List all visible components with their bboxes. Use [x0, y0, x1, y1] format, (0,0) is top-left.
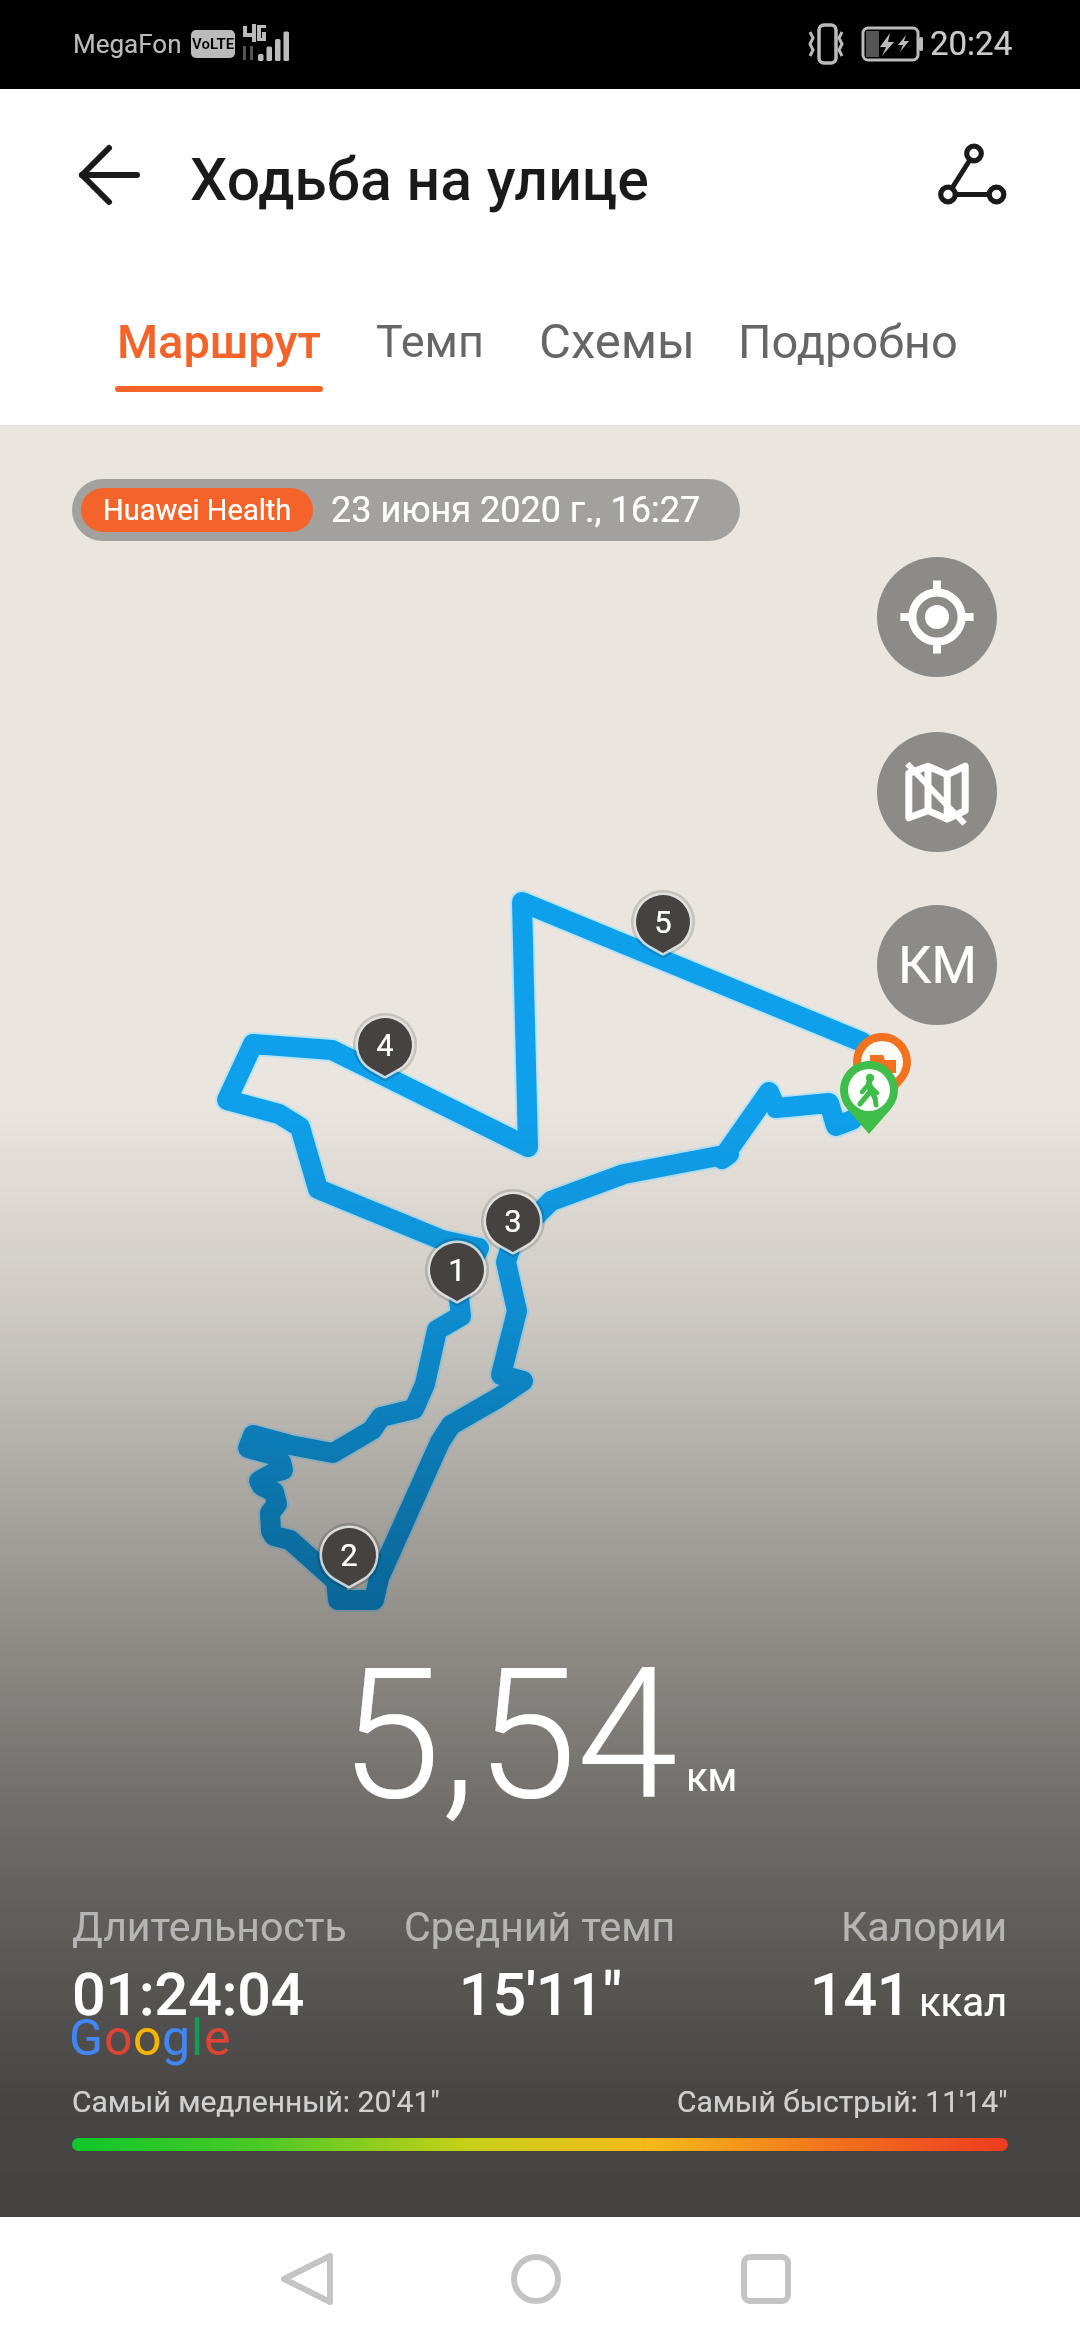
- staticText: 20:24: [930, 24, 1013, 63]
- staticText: Маршрут: [117, 314, 321, 369]
- staticText: 23 июня 2020 г., 16:27: [331, 489, 701, 531]
- staticText: o: [133, 2009, 162, 2068]
- button[interactable]: Маршрут: [115, 314, 323, 392]
- staticText: Ходьба на улице: [190, 145, 649, 214]
- staticText: 3: [504, 1203, 522, 1239]
- staticText: ккал: [919, 1979, 1008, 2026]
- staticText: e: [204, 2009, 231, 2068]
- staticText: 5: [654, 904, 672, 940]
- staticText: КМ: [898, 935, 977, 996]
- button[interactable]: Recents: [706, 2219, 826, 2339]
- staticText: Длительность: [72, 1903, 347, 1951]
- staticText: 1: [448, 1252, 466, 1288]
- staticText: g: [162, 2009, 191, 2068]
- staticText: MegaFon: [73, 29, 182, 59]
- button[interactable]: Схемы: [539, 313, 696, 370]
- button[interactable]: Подробно: [738, 314, 958, 369]
- staticText: Самый медленный: 20'41": [72, 2084, 440, 2119]
- button[interactable]: My location: [877, 557, 997, 677]
- button[interactable]: КМ: [877, 905, 997, 1025]
- button[interactable]: Map layers: [877, 732, 997, 852]
- button[interactable]: Huawei Health: [81, 488, 731, 532]
- staticText: 5,54: [340, 1628, 678, 1841]
- staticText: 01:24:04: [72, 1960, 305, 2029]
- staticText: 141: [810, 1960, 911, 2029]
- staticText: Калории: [841, 1903, 1008, 1951]
- staticText: G: [69, 2009, 104, 2068]
- staticText: o: [104, 2009, 133, 2068]
- staticText: Средний темп: [404, 1903, 676, 1951]
- button[interactable]: Home: [476, 2219, 596, 2339]
- staticText: 2: [340, 1537, 358, 1573]
- staticText: км: [686, 1754, 738, 1801]
- staticText: Huawei Health: [103, 493, 292, 527]
- staticText: VoLTE: [192, 35, 235, 53]
- staticText: 4: [376, 1027, 394, 1063]
- staticText: Самый быстрый: 11'14": [677, 2084, 1008, 2119]
- button[interactable]: Back: [49, 115, 169, 235]
- button[interactable]: Темп: [376, 315, 484, 368]
- button[interactable]: Back: [247, 2219, 367, 2339]
- button[interactable]: Share: [911, 113, 1033, 235]
- staticText: l: [191, 2009, 204, 2068]
- staticText: 15'11": [459, 1960, 622, 2029]
